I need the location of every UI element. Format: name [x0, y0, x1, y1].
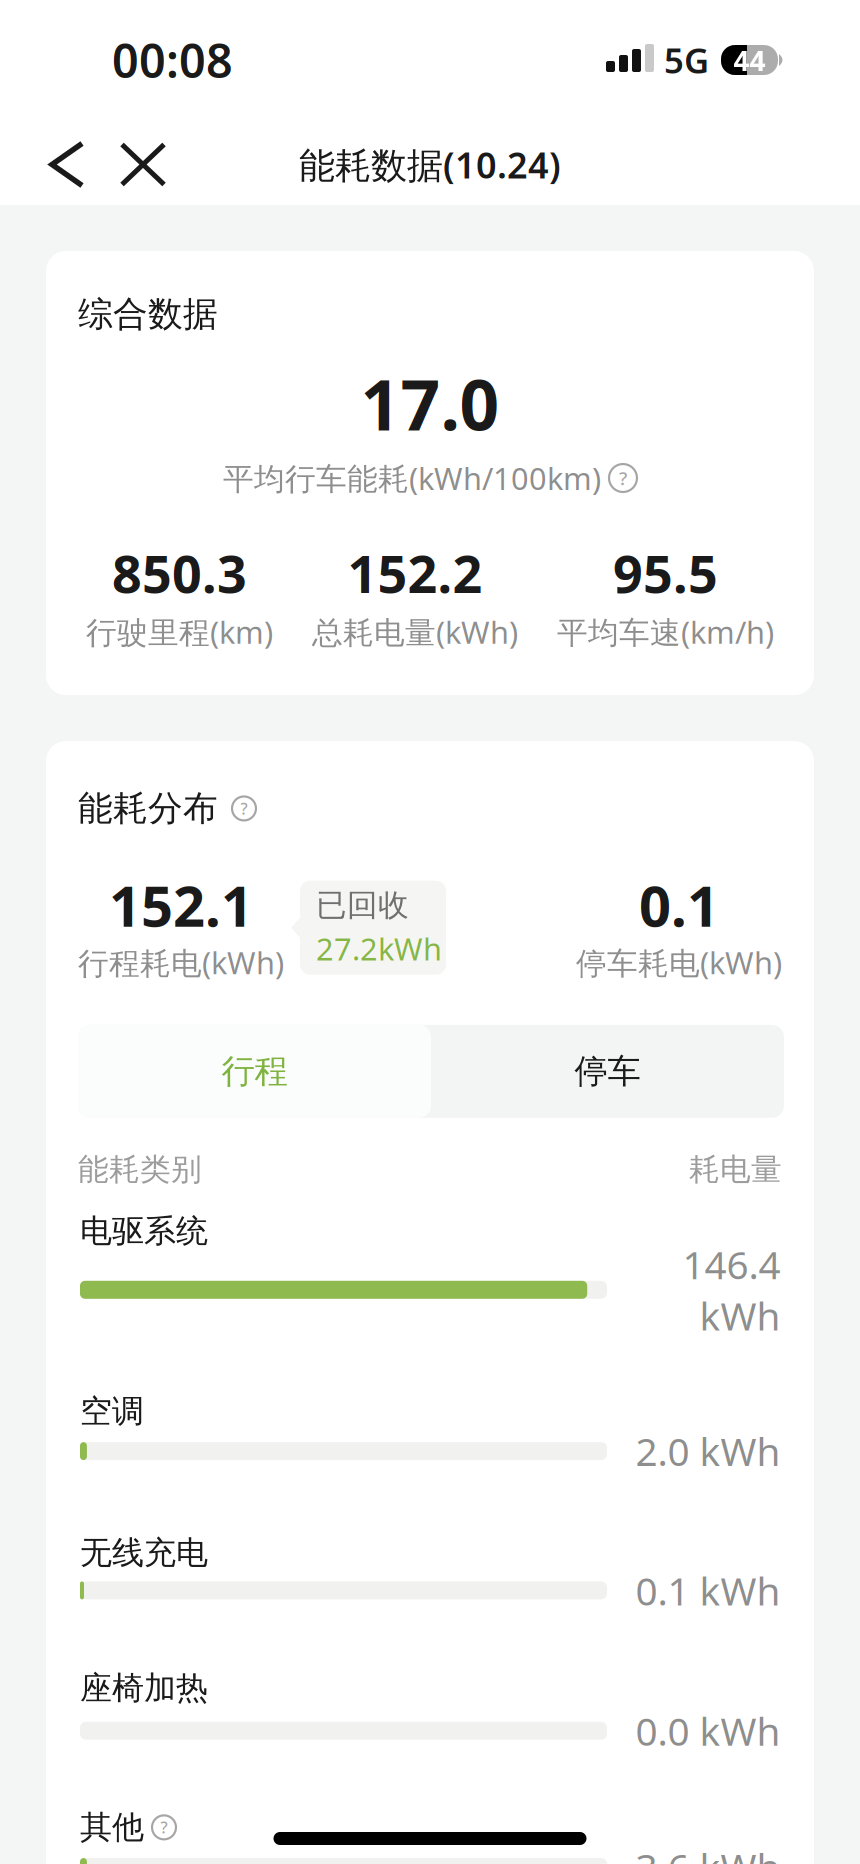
staticText: 能耗类别 — [78, 1151, 202, 1188]
staticText: 152.2 — [347, 538, 482, 607]
staticText: 17.0 — [360, 358, 499, 450]
staticText: 2.0 kWh — [635, 1425, 780, 1477]
button[interactable]: ? — [609, 464, 637, 492]
staticText: 座椅加热 — [80, 1668, 208, 1708]
staticText: 耗电量 — [689, 1151, 782, 1188]
staticText: 已回收 — [316, 886, 409, 924]
staticText: 能耗数据(10.24) — [299, 141, 561, 188]
staticText: ? — [240, 798, 247, 819]
staticText: 其他 — [80, 1808, 144, 1847]
button[interactable]: 停车 — [431, 1025, 784, 1118]
button[interactable] — [0, 143, 112, 185]
staticText: 停车 — [574, 1051, 640, 1092]
staticText: 5G — [664, 37, 709, 83]
staticText: 0.0 kWh — [635, 1705, 780, 1756]
staticText: 综合数据 — [78, 293, 218, 336]
staticText: 850.3 — [112, 538, 247, 607]
staticText: ? — [619, 466, 627, 490]
staticText: 27.2kWh — [316, 928, 442, 969]
button[interactable]: 行程 — [78, 1025, 431, 1118]
staticText: 00:08 — [112, 29, 233, 91]
staticText: 152.1 — [109, 868, 253, 942]
staticText: 总耗电量(kWh) — [312, 611, 518, 652]
staticText: 146.4 kWh — [682, 1238, 780, 1341]
staticText: 平均行车能耗(kWh/100km) — [223, 458, 601, 498]
staticText: 0.1 kWh — [635, 1565, 780, 1616]
staticText: 3.6 kWh — [635, 1841, 780, 1864]
staticText: 无线充电 — [80, 1533, 208, 1572]
button[interactable]: ? — [152, 1815, 176, 1839]
staticText: 空调 — [80, 1392, 144, 1431]
staticText: 95.5 — [613, 538, 718, 607]
staticText: 44 — [733, 41, 765, 79]
staticText: 0.1 — [639, 868, 719, 942]
staticText: 行程 — [221, 1051, 287, 1092]
staticText: ? — [160, 1817, 167, 1838]
staticText: 停车耗电(kWh) — [576, 942, 782, 983]
button[interactable]: ? — [232, 796, 256, 820]
button[interactable] — [112, 144, 174, 184]
staticText: 行程耗电(kWh) — [78, 942, 284, 983]
staticText: 行驶里程(km) — [86, 611, 273, 652]
staticText: 能耗分布 — [78, 787, 218, 830]
staticText: 平均车速(km/h) — [557, 611, 774, 652]
staticText: 电驱系统 — [80, 1211, 208, 1251]
